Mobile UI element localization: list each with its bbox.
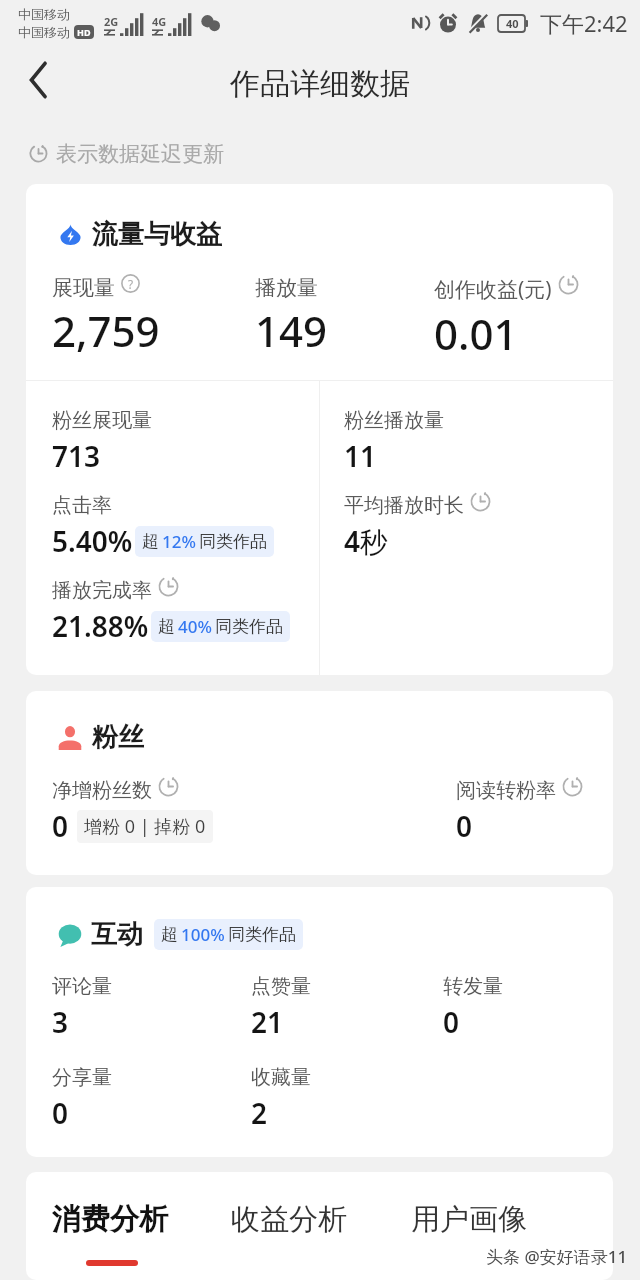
staticText: 0 [456, 807, 473, 845]
staticText: 中国移动 [18, 24, 70, 40]
staticText: 收益分析 [231, 1201, 347, 1238]
staticText: 点击率 [52, 493, 112, 518]
staticText: 21.88% [52, 607, 149, 645]
staticText: 4秒 [344, 522, 389, 560]
staticText: 11 [344, 437, 377, 475]
staticText: 2,759 [52, 302, 160, 359]
staticText: 中国移动 [18, 6, 70, 22]
staticText: 超 [158, 616, 175, 637]
staticText: 转发量 [443, 974, 503, 999]
staticText: 净增粉丝数 [52, 778, 152, 803]
staticText: 消费分析 [52, 1201, 168, 1238]
staticText: 作品详细数据 [230, 65, 410, 103]
staticText: 点赞量 [251, 974, 311, 999]
button[interactable]: 用户画像 [411, 1201, 527, 1260]
staticText: 播放完成率 [52, 578, 152, 603]
staticText: 713 [52, 437, 101, 475]
staticText: 评论量 [52, 974, 112, 999]
staticText: 0.01 [434, 305, 518, 362]
staticText: 40 [506, 16, 519, 31]
staticText: 同类作品 [228, 924, 296, 945]
staticText: 下午2:42 [540, 8, 628, 38]
staticText: 3 [52, 1003, 69, 1041]
staticText: 收藏量 [251, 1065, 311, 1090]
staticText: 2 [251, 1094, 268, 1132]
staticText: 播放量 [255, 275, 318, 301]
staticText: 0 [52, 1094, 69, 1132]
staticText: 超 [161, 924, 178, 945]
staticText: 149 [255, 302, 328, 359]
staticText: 表示数据延迟更新 [56, 141, 224, 167]
button[interactable]: 收益分析 [231, 1201, 411, 1260]
staticText: 粉丝展现量 [52, 408, 152, 433]
staticText: 0 [443, 1003, 460, 1041]
staticText: ? [128, 276, 134, 292]
staticText: 同类作品 [199, 531, 267, 552]
button[interactable]: 流量与收益 [26, 184, 613, 675]
staticText: 互动 [91, 918, 143, 951]
staticText: HD [77, 26, 91, 38]
staticText: 用户画像 [411, 1201, 527, 1238]
staticText: 粉丝播放量 [344, 408, 444, 433]
staticText: 21 [251, 1003, 284, 1041]
button[interactable]: Back [13, 54, 65, 106]
staticText: 创作收益(元) [434, 275, 552, 304]
staticText: 12% [162, 530, 196, 553]
staticText: 增粉 0 | 掉粉 0 [84, 814, 206, 839]
button[interactable]: 粉丝 [26, 691, 613, 875]
button[interactable]: 互动 [26, 887, 613, 1157]
staticText: 头条 @安好语录11 [486, 1245, 628, 1268]
staticText: 展现量 [52, 275, 115, 301]
button[interactable]: 消费分析 [52, 1201, 231, 1266]
staticText: 分享量 [52, 1065, 112, 1090]
staticText: 同类作品 [215, 616, 283, 637]
staticText: 5.40% [52, 522, 133, 560]
staticText: 阅读转粉率 [456, 778, 556, 803]
staticText: 粉丝 [92, 721, 144, 754]
staticText: 平均播放时长 [344, 493, 464, 518]
staticText: 100% [181, 923, 225, 946]
staticText: 40% [178, 615, 212, 638]
staticText: 超 [142, 531, 159, 552]
staticText: 2G [104, 14, 119, 29]
staticText: 4G [152, 14, 167, 29]
staticText: 流量与收益 [92, 218, 222, 251]
staticText: 0 [52, 807, 69, 845]
